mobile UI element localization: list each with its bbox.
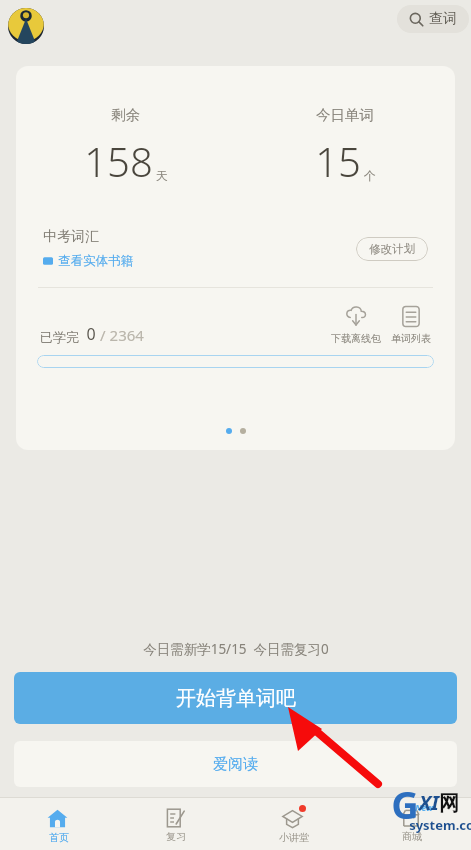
staticText: 首页 — [49, 831, 69, 844]
button[interactable]: 首页 — [0, 798, 117, 850]
button[interactable]: Profile — [8, 8, 44, 44]
staticText: New — [415, 802, 433, 814]
button[interactable]: 下载离线包 — [331, 305, 381, 345]
button[interactable]: 修改计划 — [356, 237, 428, 261]
staticText: 查看实体书籍 — [58, 253, 133, 269]
staticText: 0 — [86, 323, 96, 345]
staticText: / 2364 — [100, 325, 144, 345]
button[interactable]: 开始背单词吧 — [14, 672, 457, 724]
staticText: 158 — [84, 134, 153, 188]
staticText: system.com — [409, 816, 471, 834]
staticText: 网 — [439, 791, 459, 816]
staticText: 单词列表 — [391, 332, 431, 345]
staticText: 修改计划 — [369, 242, 415, 256]
staticText: 个 — [364, 168, 376, 183]
button[interactable]: 查看实体书籍 — [43, 253, 133, 269]
staticText: 中考词汇 — [43, 228, 99, 246]
staticText: 商城 — [402, 830, 422, 843]
staticText: 已学完 — [40, 329, 79, 345]
button[interactable]: 爱阅读 — [14, 741, 457, 787]
button[interactable]: New — [353, 798, 471, 850]
staticText: 爱阅读 — [213, 755, 258, 774]
staticText: 今日需新学15/15 今日需复习0 — [143, 640, 329, 658]
staticText: XI — [419, 789, 439, 816]
button[interactable]: 剩余 — [16, 66, 455, 450]
button[interactable]: 复习 — [117, 798, 235, 850]
staticText: 今日单词 — [316, 106, 374, 124]
button[interactable]: 查词 — [397, 5, 469, 33]
staticText: G — [391, 778, 419, 830]
staticText: 开始背单词吧 — [176, 686, 296, 711]
staticText: 剩余 — [111, 106, 140, 124]
staticText: 复习 — [166, 830, 186, 843]
staticText: 下载离线包 — [331, 332, 381, 345]
staticText: 小讲堂 — [279, 831, 309, 844]
staticText: 15 — [315, 134, 361, 188]
staticText: 查词 — [429, 10, 457, 28]
button[interactable]: 单词列表 — [391, 305, 431, 345]
staticText: 天 — [156, 168, 168, 183]
button[interactable]: 小讲堂 — [235, 798, 353, 850]
